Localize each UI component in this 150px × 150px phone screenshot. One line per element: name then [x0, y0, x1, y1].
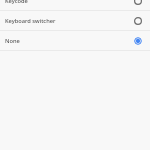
staticText: Keycode — [5, 0, 133, 5]
staticText: Keyboard switcher — [5, 17, 133, 25]
button[interactable]: None — [0, 31, 150, 51]
staticText: None — [5, 37, 133, 45]
button[interactable]: Keycode — [0, 0, 150, 11]
button[interactable]: Keyboard switcher — [0, 11, 150, 31]
